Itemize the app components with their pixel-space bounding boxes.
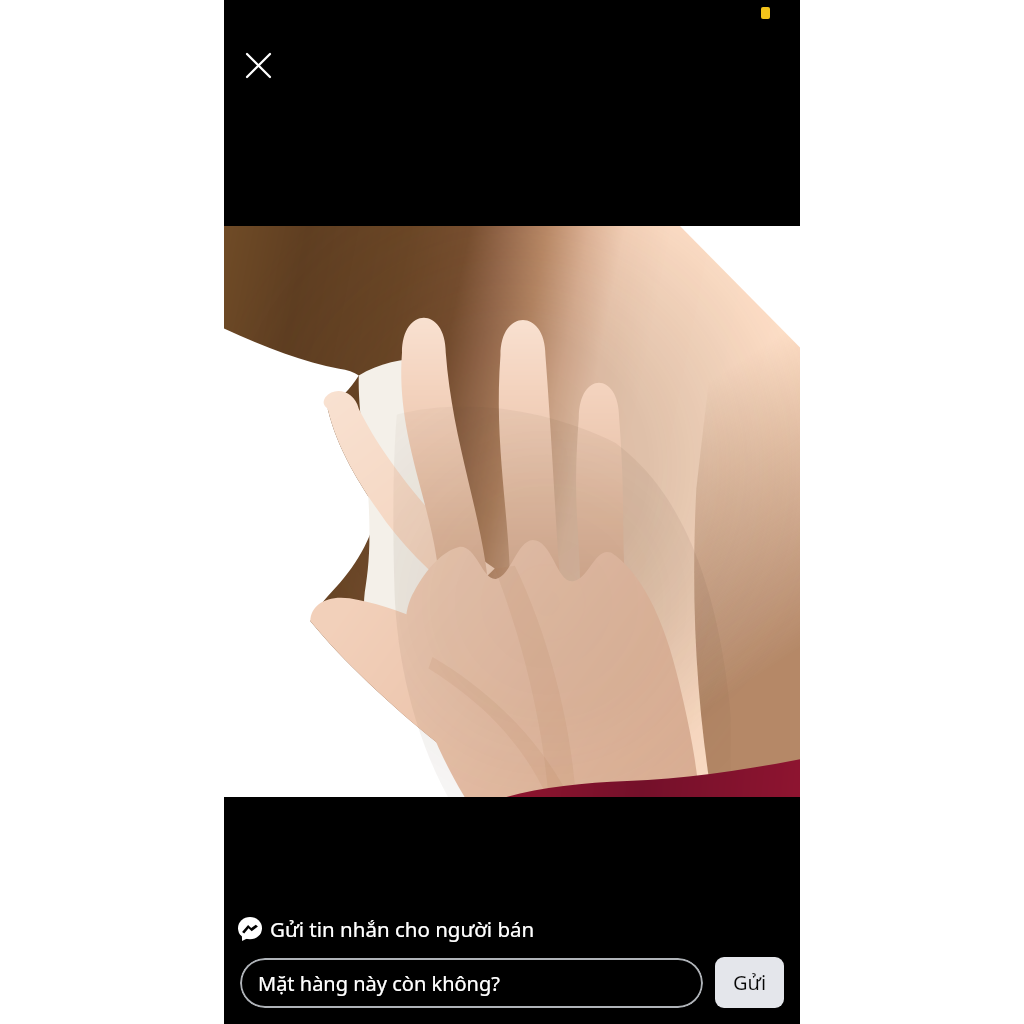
button[interactable]: Mặt hàng này còn không? [240,958,703,1008]
staticText: Gửi [733,969,767,996]
button[interactable]: Close [234,41,282,89]
button[interactable]: Gửi tin nhắn cho người bán [238,915,800,943]
staticText: Gửi tin nhắn cho người bán [270,915,535,943]
staticText: Mặt hàng này còn không? [258,970,500,997]
button[interactable]: Gửi [715,957,784,1008]
